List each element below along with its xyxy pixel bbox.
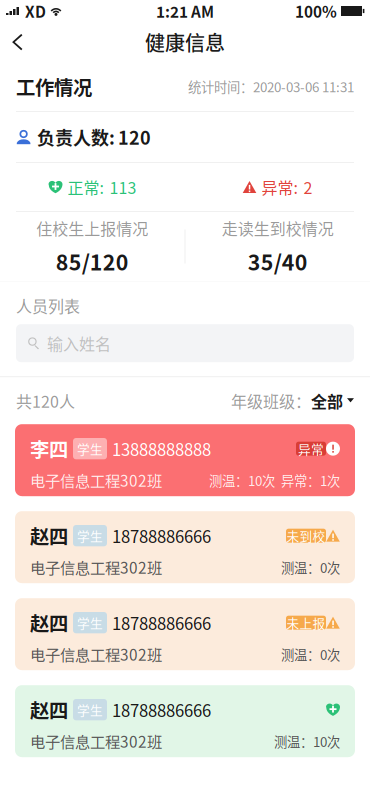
staticText: 统计时间： — [188, 77, 253, 96]
button[interactable]: 李四 — [15, 424, 355, 496]
staticText: 赵四 — [30, 696, 68, 724]
staticText: 人员列表 — [16, 294, 80, 317]
staticText: 2020-03-06 11:31 — [253, 77, 354, 96]
staticText: 测温：10次 异常：1次 — [209, 470, 340, 490]
staticText: 异常: — [261, 175, 297, 199]
staticText: 电子信息工程302班 — [30, 643, 162, 665]
staticText: 1:21 AM — [156, 0, 214, 22]
button[interactable]: 赵四 — [15, 511, 355, 583]
staticText: 120 — [118, 124, 151, 150]
staticText: 正常: — [67, 175, 103, 199]
staticText: 工作情况 — [16, 72, 92, 100]
button[interactable]: 赵四 — [15, 685, 355, 757]
staticText: 学生 — [77, 613, 103, 632]
staticText: 测温：0次 — [281, 557, 340, 577]
staticText: XD — [22, 0, 49, 22]
staticText: 113 — [109, 175, 136, 199]
staticText: 测温：10次 — [274, 731, 340, 751]
button[interactable]: 全部 — [311, 389, 354, 412]
staticText: 电子信息工程302班 — [30, 556, 162, 578]
staticText: 电子信息工程302班 — [30, 730, 162, 752]
staticText: 2 — [303, 175, 312, 199]
staticText: 学生 — [77, 439, 103, 458]
staticText: 电子信息工程302班 — [30, 469, 162, 491]
staticText: 未上报 — [286, 613, 325, 632]
staticText: 100% — [295, 0, 337, 22]
staticText: 负责人数: — [37, 124, 115, 150]
staticText: 未到校 — [286, 526, 325, 545]
staticText: 测温：0次 — [281, 644, 340, 664]
staticText: 健康信息 — [145, 27, 225, 56]
staticText: 年级班级： — [231, 389, 311, 412]
button[interactable]: 输入姓名 — [16, 324, 354, 362]
staticText: 学生 — [77, 700, 103, 719]
staticText: 18788886666 — [112, 611, 211, 635]
staticText: 赵四 — [30, 609, 68, 637]
staticText: 13888888888 — [112, 437, 211, 461]
staticText: 全部 — [311, 389, 343, 412]
staticText: 学生 — [77, 526, 103, 545]
staticText: 住校生上报情况 — [36, 216, 148, 240]
staticText: 输入姓名 — [47, 332, 111, 355]
button[interactable]: Back — [0, 22, 39, 62]
staticText: 18788886666 — [112, 524, 211, 548]
staticText: 赵四 — [30, 522, 68, 550]
staticText: 85/120 — [56, 246, 129, 276]
staticText: 18788886666 — [112, 698, 211, 722]
staticText: 李四 — [30, 435, 68, 463]
staticText: 共120人 — [16, 389, 75, 412]
staticText: 异常 — [298, 439, 324, 458]
staticText: 走读生到校情况 — [222, 216, 334, 240]
button[interactable]: 赵四 — [15, 598, 355, 670]
staticText: 35/40 — [248, 246, 308, 276]
